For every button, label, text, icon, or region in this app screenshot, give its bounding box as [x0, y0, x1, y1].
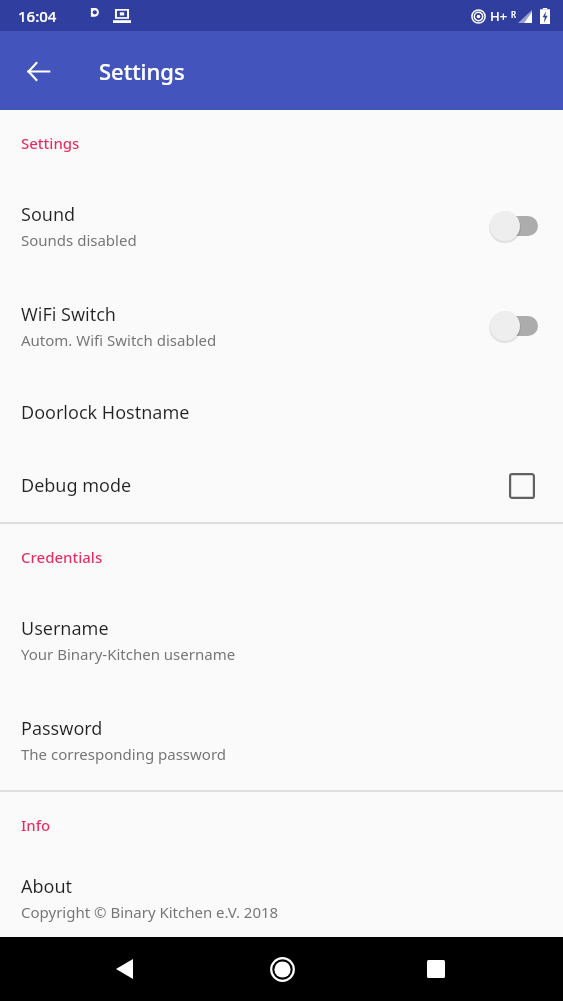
button[interactable]: Toggle switch, off: [490, 208, 542, 244]
staticText: 16:04: [18, 6, 57, 26]
staticText: WiFi Switch: [21, 302, 116, 327]
button[interactable]: Navigate back: [14, 47, 62, 95]
staticText: The corresponding password: [21, 744, 227, 764]
staticText: Info: [21, 815, 51, 835]
staticText: Password: [21, 716, 103, 741]
button[interactable]: Home: [258, 945, 306, 993]
staticText: R: [511, 9, 517, 20]
staticText: Copyright © Binary Kitchen e.V. 2018: [21, 902, 279, 922]
button[interactable]: Toggle switch, off: [490, 308, 542, 344]
staticText: Sounds disabled: [21, 230, 137, 250]
button[interactable]: About: [0, 858, 563, 937]
staticText: Sound: [21, 202, 76, 227]
button[interactable]: WiFi Switch: [0, 276, 563, 376]
staticText: Username: [21, 616, 109, 641]
button[interactable]: Debug mode: [0, 449, 563, 522]
staticText: Debug mode: [21, 473, 132, 498]
button[interactable]: Doorlock Hostname: [0, 376, 563, 449]
button[interactable]: Back: [100, 945, 148, 993]
button[interactable]: Recent apps: [412, 945, 460, 993]
button[interactable]: Password: [0, 690, 563, 790]
staticText: Settings: [21, 133, 80, 153]
staticText: Your Binary-Kitchen username: [21, 644, 236, 664]
staticText: H+: [490, 7, 508, 25]
staticText: About: [21, 874, 73, 899]
button[interactable]: Sound: [0, 176, 563, 276]
button[interactable]: Username: [0, 590, 563, 690]
button[interactable]: Debug mode checkbox, unchecked: [502, 466, 542, 506]
staticText: Autom. Wifi Switch disabled: [21, 330, 217, 350]
staticText: Settings: [99, 56, 185, 86]
staticText: Credentials: [21, 547, 103, 567]
staticText: Doorlock Hostname: [21, 400, 190, 425]
